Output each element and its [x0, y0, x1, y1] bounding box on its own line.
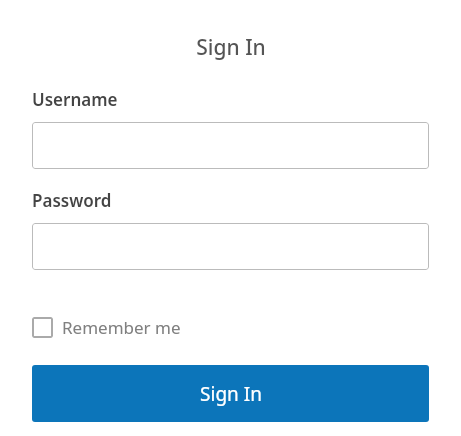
staticText: Password [32, 189, 112, 212]
staticText: Sign In [196, 33, 266, 62]
button[interactable]: Username input field [32, 122, 429, 169]
button[interactable]: Remember me [32, 316, 181, 339]
staticText: Sign In [200, 381, 262, 407]
button[interactable]: Password input field [32, 223, 429, 270]
button[interactable]: Sign In [32, 365, 429, 422]
staticText: Username [32, 88, 118, 111]
staticText: Remember me [62, 316, 181, 339]
